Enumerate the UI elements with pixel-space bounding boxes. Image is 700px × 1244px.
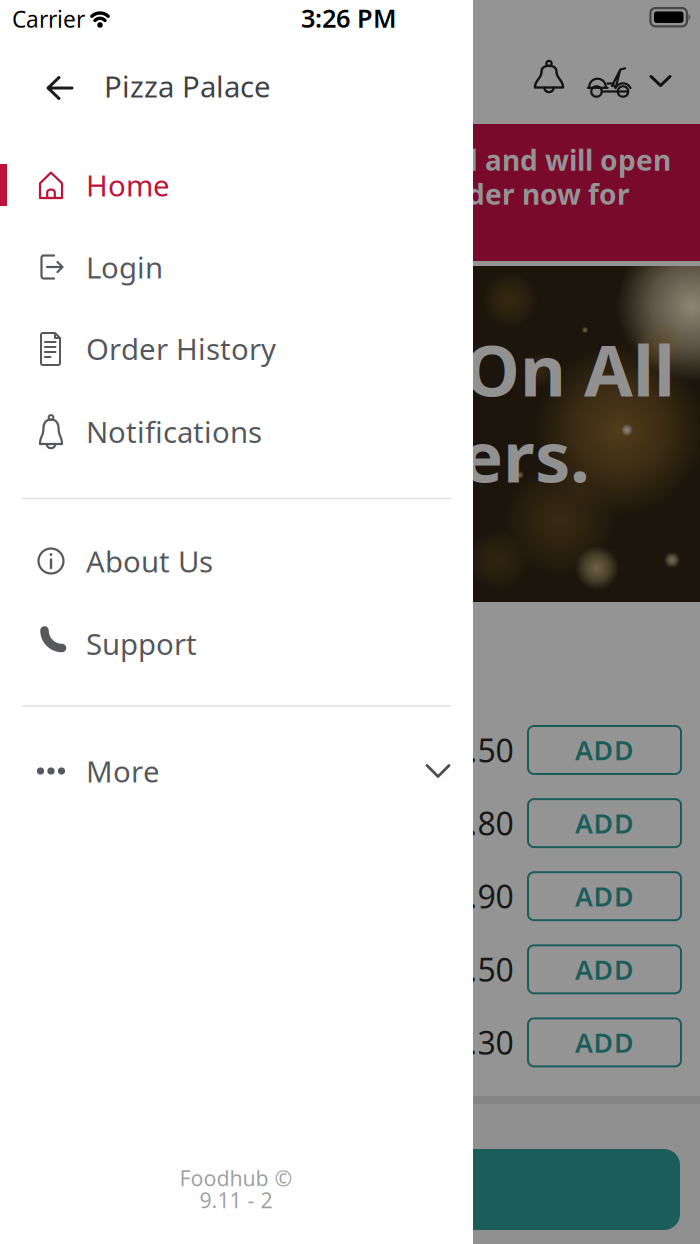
staticText: ADD [575, 805, 634, 841]
staticText: 10% Off On All [173, 322, 675, 416]
button[interactable]: Login [0, 226, 473, 308]
staticText: Orders. [330, 408, 590, 502]
staticText: Notifications [86, 412, 262, 451]
button[interactable]: Support [0, 602, 473, 684]
staticText: Support [86, 624, 197, 663]
button[interactable]: Home [0, 144, 473, 226]
button[interactable]: Order History [0, 307, 473, 389]
staticText: ADD [575, 878, 634, 914]
staticText: Login [86, 247, 163, 286]
staticText: Carrier [12, 4, 85, 34]
button[interactable]: Notifications [0, 390, 473, 472]
button[interactable]: Back [40, 66, 84, 110]
button[interactable]: ADD [528, 1018, 681, 1066]
staticText: £3.50 [432, 948, 513, 991]
staticText: About Us [86, 541, 213, 580]
staticText: £3.50 [432, 729, 513, 771]
staticText: Foodhub © [179, 1164, 292, 1192]
staticText: £4.80 [432, 802, 513, 844]
staticText: More [86, 751, 160, 790]
staticText: Pizza Palace [104, 66, 271, 105]
staticText: tomorrow. You can order now for [167, 175, 630, 213]
button[interactable]: More [0, 730, 473, 812]
staticText: 9.11 - 2 [199, 1186, 272, 1214]
button[interactable]: ADD [528, 799, 681, 847]
staticText: Order History [86, 329, 276, 368]
button[interactable]: ADD [528, 872, 681, 920]
button[interactable]: ADD [528, 945, 681, 993]
button[interactable]: View Basket [20, 1149, 680, 1230]
staticText: £6.30 [432, 1021, 513, 1064]
staticText: ADD [575, 1025, 634, 1060]
staticText: ADD [575, 732, 634, 768]
staticText: Home [86, 165, 170, 204]
staticText: ADD [575, 952, 634, 987]
staticText: 3:26 PM [301, 1, 397, 35]
staticText: £4.90 [432, 875, 513, 917]
button[interactable]: About Us [0, 520, 473, 602]
staticText: takeaway is closed and will open [216, 141, 671, 179]
button[interactable]: ADD [528, 726, 681, 774]
